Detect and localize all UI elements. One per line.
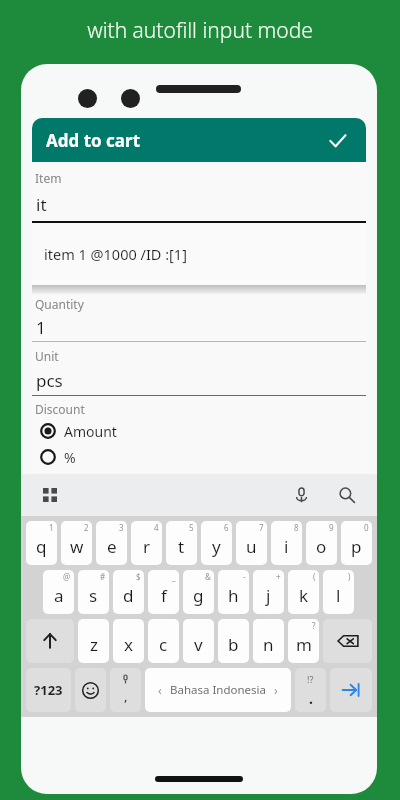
button[interactable]: ?: [288, 619, 319, 663]
button[interactable]: Emoji: [75, 668, 106, 712]
staticText: r: [143, 535, 151, 558]
staticText: 3: [119, 522, 124, 533]
staticText: y: [212, 535, 221, 558]
button[interactable]: &: [183, 570, 214, 614]
staticText: d: [123, 584, 134, 607]
staticText: Discount: [35, 401, 85, 417]
staticText: z: [90, 633, 98, 656]
button[interactable]: Save: [322, 125, 352, 155]
staticText: i: [284, 535, 289, 558]
button[interactable]: n: [253, 619, 284, 663]
staticText: e: [107, 535, 117, 558]
staticText: k: [299, 584, 309, 607]
staticText: ): [348, 571, 351, 582]
button[interactable]: ): [323, 570, 354, 614]
button[interactable]: x: [113, 619, 144, 663]
button[interactable]: 5: [166, 521, 197, 565]
staticText: ?: [312, 620, 316, 631]
staticText: with autofill input mode: [0, 16, 400, 45]
staticText: m: [296, 633, 312, 656]
staticText: ‹: [158, 682, 162, 698]
button[interactable]: #: [78, 570, 109, 614]
button[interactable]: Comma: [110, 668, 141, 712]
button[interactable]: Symbols: [26, 668, 71, 712]
button[interactable]: 2: [61, 521, 92, 565]
button[interactable]: Search: [333, 481, 361, 509]
button[interactable]: Voice input: [287, 481, 315, 509]
button[interactable]: 3: [96, 521, 127, 565]
button[interactable]: @: [43, 570, 74, 614]
button[interactable]: 6: [201, 521, 232, 565]
staticText: 4: [154, 522, 159, 533]
staticText: pcs: [36, 369, 63, 392]
staticText: 8: [294, 522, 299, 533]
button[interactable]: 1: [26, 521, 57, 565]
staticText: 9: [329, 522, 334, 533]
staticText: b: [228, 633, 239, 656]
button[interactable]: Clipboard: [37, 482, 63, 508]
staticText: c: [159, 633, 168, 656]
button[interactable]: +: [253, 570, 284, 614]
staticText: u: [246, 535, 257, 558]
staticText: ,: [124, 687, 128, 705]
button[interactable]: -: [218, 570, 249, 614]
staticText: g: [193, 584, 204, 607]
staticText: x: [124, 633, 133, 656]
staticText: +: [276, 571, 281, 582]
staticText: o: [316, 535, 327, 558]
button[interactable]: item 1 @1000 /ID :[1]: [32, 223, 366, 285]
button[interactable]: (: [288, 570, 319, 614]
button[interactable]: %: [32, 444, 366, 470]
staticText: Item: [35, 170, 62, 186]
button[interactable]: Amount: [32, 418, 366, 444]
button[interactable]: c: [148, 619, 179, 663]
staticText: h: [228, 584, 239, 607]
staticText: .: [309, 689, 313, 708]
button[interactable]: z: [78, 619, 109, 663]
staticText: !?: [307, 673, 314, 685]
staticText: ›: [274, 682, 278, 698]
button[interactable]: 7: [236, 521, 267, 565]
staticText: Bahasa Indonesia: [170, 682, 266, 698]
staticText: _: [172, 571, 176, 582]
staticText: item 1 @1000 /ID :[1]: [44, 244, 187, 264]
staticText: ?123: [34, 681, 63, 699]
button[interactable]: ‹: [145, 668, 291, 712]
button[interactable]: $: [113, 570, 144, 614]
staticText: 0: [364, 522, 369, 533]
button[interactable]: 9: [306, 521, 337, 565]
staticText: Quantity: [35, 296, 84, 312]
button[interactable]: Next field: [330, 668, 372, 712]
staticText: 6: [224, 522, 229, 533]
button[interactable]: 8: [271, 521, 302, 565]
button[interactable]: Shift: [26, 619, 74, 663]
staticText: &: [205, 571, 211, 582]
staticText: a: [54, 584, 64, 607]
staticText: f: [161, 584, 167, 607]
button[interactable]: _: [148, 570, 179, 614]
staticText: s: [89, 584, 98, 607]
staticText: t: [178, 535, 185, 558]
staticText: 1: [36, 316, 46, 339]
staticText: 7: [259, 522, 264, 533]
button[interactable]: 4: [131, 521, 162, 565]
button[interactable]: Period: [295, 668, 326, 712]
button[interactable]: 0: [341, 521, 372, 565]
staticText: 1: [49, 522, 54, 533]
staticText: -: [243, 571, 246, 582]
button[interactable]: v: [183, 619, 214, 663]
button[interactable]: b: [218, 619, 249, 663]
staticText: #: [100, 571, 106, 582]
staticText: $: [136, 571, 141, 582]
staticText: p: [351, 535, 362, 558]
staticText: 5: [189, 522, 194, 533]
staticText: it: [36, 193, 47, 216]
staticText: Amount: [64, 422, 117, 441]
button[interactable]: Backspace: [323, 619, 372, 663]
staticText: v: [194, 633, 203, 656]
staticText: w: [70, 535, 84, 558]
staticText: Unit: [35, 348, 59, 364]
staticText: j: [266, 584, 271, 607]
staticText: @: [63, 571, 71, 582]
staticText: q: [36, 535, 47, 558]
